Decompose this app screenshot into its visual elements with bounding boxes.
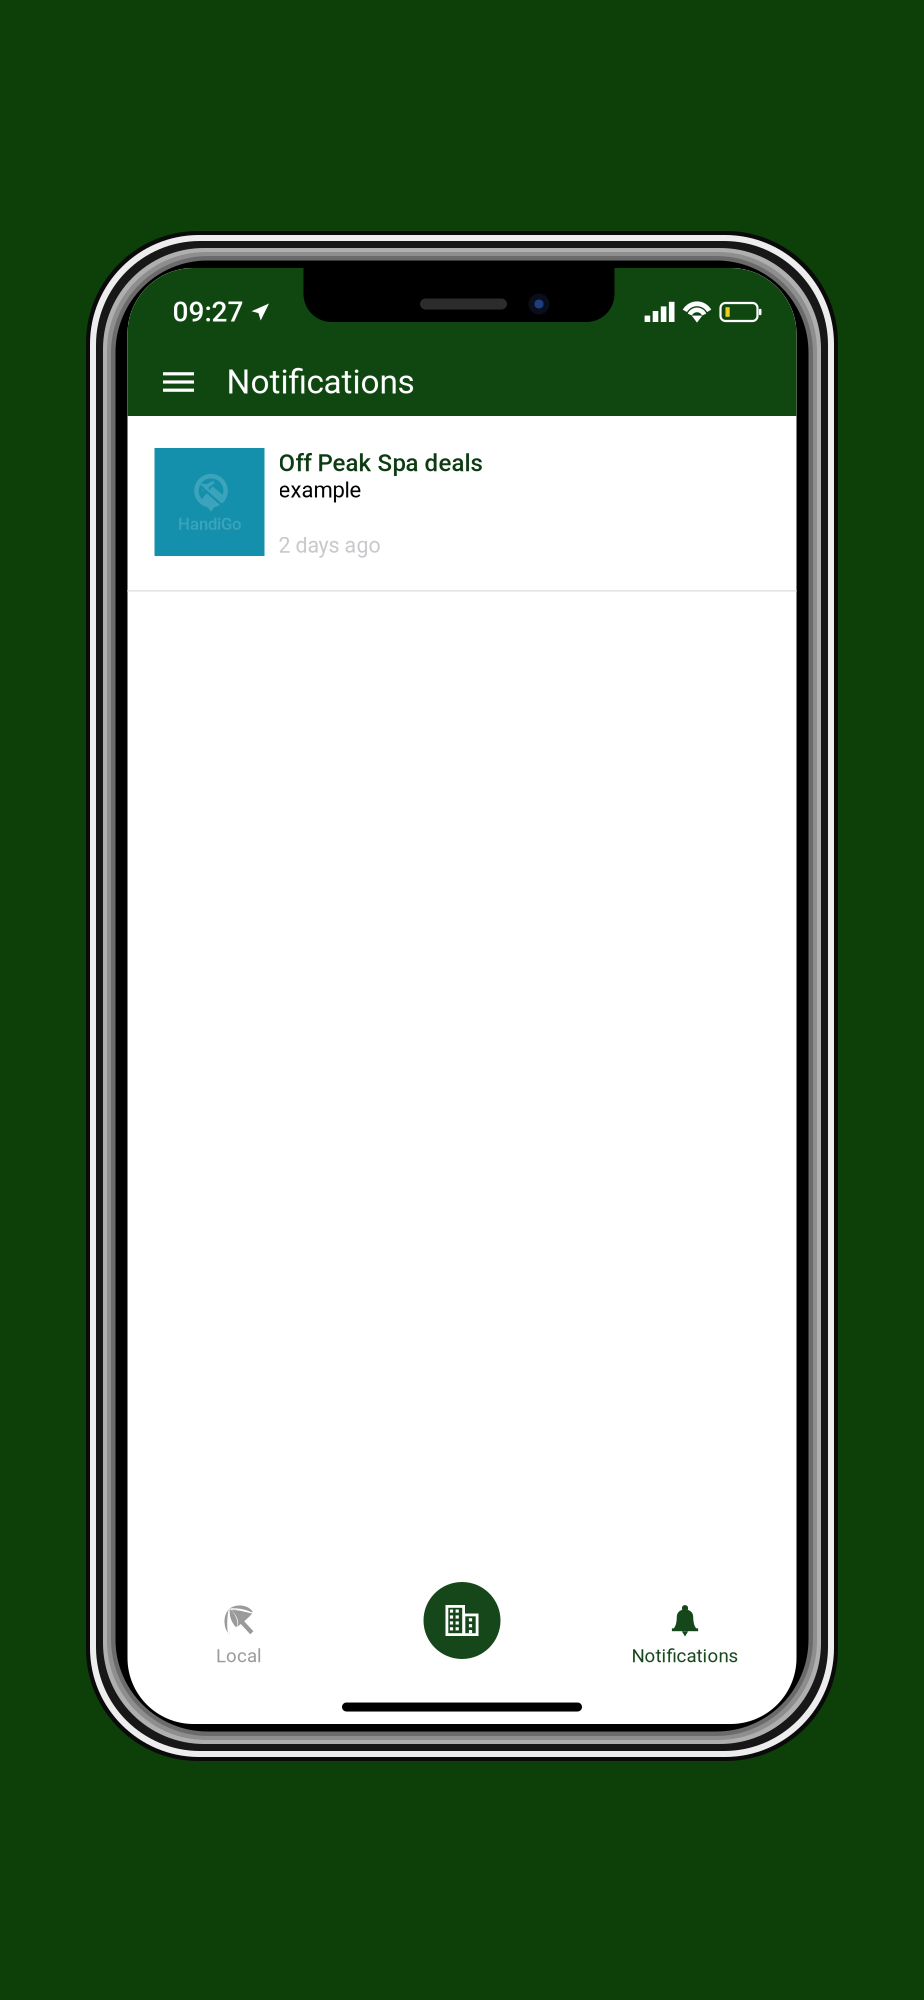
staticText: Notifications <box>226 362 414 402</box>
button[interactable]: Business <box>350 1578 573 1690</box>
staticText: Off Peak Spa deals <box>278 449 482 477</box>
staticText: 2 days ago <box>278 533 380 558</box>
staticText: Notifications <box>631 1645 738 1667</box>
button[interactable]: Menu <box>148 349 208 415</box>
button[interactable]: Local <box>127 1578 350 1690</box>
button[interactable]: Notifications <box>573 1578 796 1690</box>
staticText: example <box>278 477 361 503</box>
staticText: 09:27 <box>172 296 243 328</box>
staticText: HandiGo <box>178 514 241 534</box>
staticText: Local <box>216 1645 262 1667</box>
button[interactable]: HandiGo <box>127 416 796 592</box>
